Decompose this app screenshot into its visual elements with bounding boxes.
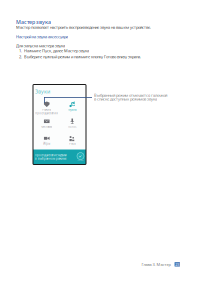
staticText: Режим — [42, 108, 51, 111]
button[interactable]: Фильмы — [34, 115, 59, 132]
staticText: Для запуска мастера звука — [16, 43, 65, 48]
staticText: Прослушивание музыки — [35, 153, 67, 157]
staticText: Фильмы — [41, 125, 52, 128]
staticText: Готово — [77, 160, 83, 161]
staticText: Звуки — [35, 88, 50, 95]
button[interactable]: Музыка — [59, 98, 85, 115]
button[interactable]: Речь — [59, 132, 85, 149]
staticText: Голос — [68, 125, 76, 128]
staticText: в выбранном режиме — [35, 157, 66, 160]
button[interactable]: Режим — [34, 98, 59, 115]
staticText: Настройка звука аксессуара — [16, 34, 68, 39]
staticText: Музыка — [68, 108, 76, 111]
staticText: 23 — [175, 262, 179, 267]
staticText: 1. — [19, 48, 22, 53]
staticText: Игры — [43, 142, 50, 145]
staticText: Глава 3. Мастер — [141, 262, 170, 267]
staticText: в списке доступных режимов звука — [94, 96, 157, 102]
staticText: Мастер позволяет настроить воспроизведен… — [16, 24, 151, 30]
staticText: Выбранный режим отмечается галочкой — [94, 92, 167, 98]
staticText: Мастер звука — [16, 18, 51, 26]
staticText: Речь — [69, 142, 75, 145]
staticText: 2. — [19, 54, 22, 59]
button[interactable]: Голос — [59, 115, 85, 132]
staticText: прослушивания — [35, 111, 58, 115]
staticText: Нажмите Пуск, далее Мастер звука — [24, 48, 89, 53]
staticText: Выберите нужный режим и нажмите кнопку Г… — [24, 54, 141, 59]
button[interactable]: Игры — [34, 132, 59, 149]
button[interactable]: Готово — [77, 153, 84, 161]
